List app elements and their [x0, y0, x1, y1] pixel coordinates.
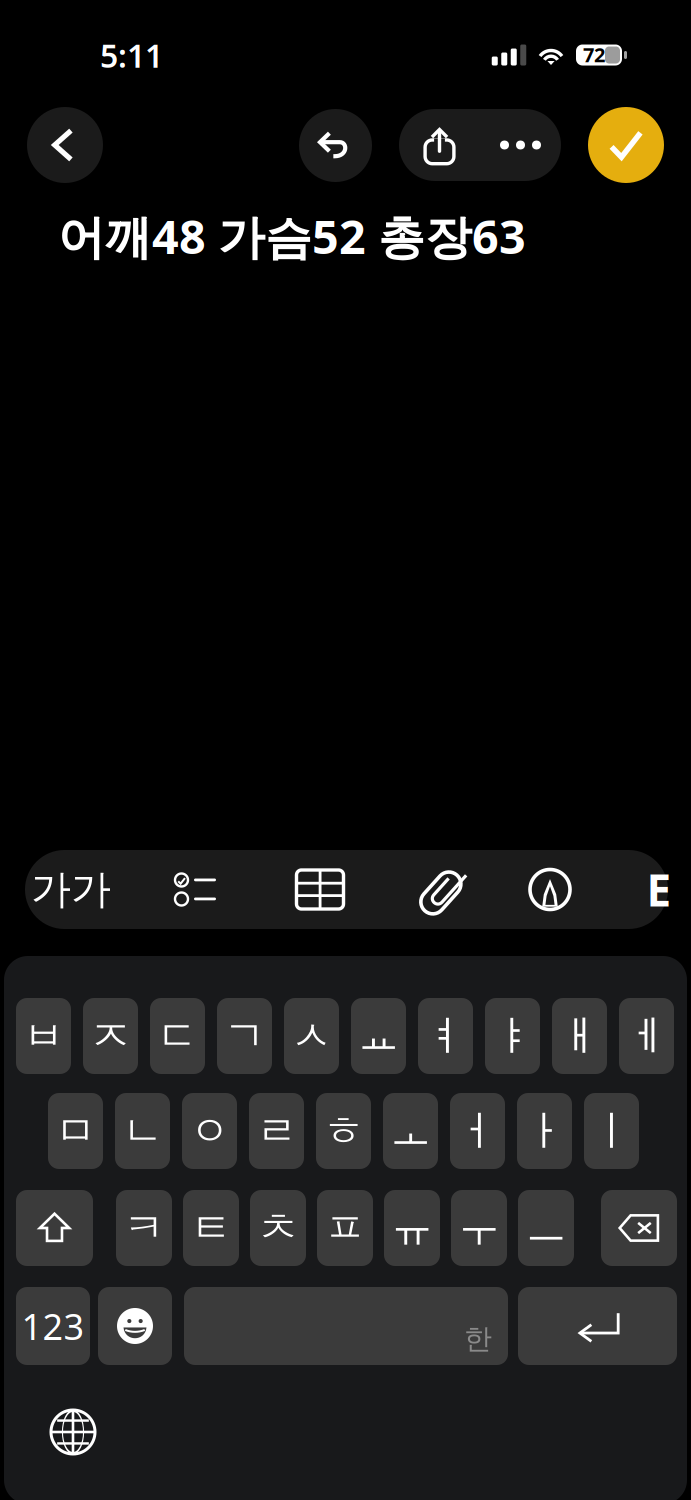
button[interactable]: More [480, 109, 561, 181]
button[interactable]: ㅓ [450, 1093, 505, 1169]
button[interactable]: ㅡ [518, 1190, 574, 1266]
staticText: 123 [21, 1302, 84, 1350]
staticText: ㅊ [257, 1203, 298, 1253]
staticText: ㅈ [90, 1011, 131, 1061]
staticText: ㅠ [391, 1203, 432, 1253]
staticText: ㄱ [224, 1011, 265, 1061]
button[interactable]: Emoji [98, 1287, 172, 1365]
staticText: ㅛ [358, 1011, 399, 1061]
button[interactable]: ㅁ [48, 1093, 103, 1169]
button[interactable]: ㅠ [384, 1190, 440, 1266]
staticText: ㅗ [390, 1106, 431, 1156]
staticText: 가가 [31, 865, 111, 914]
staticText: ㅇ [189, 1106, 230, 1156]
staticText: ㅕ [425, 1011, 466, 1061]
staticText: 한 [464, 1322, 492, 1356]
button[interactable]: Table [272, 850, 368, 929]
button[interactable]: Checklist [148, 850, 244, 929]
staticText: ㅍ [324, 1203, 365, 1253]
button[interactable]: Backspace [601, 1190, 677, 1266]
button[interactable]: ㅎ [316, 1093, 371, 1169]
button[interactable]: ㅈ [83, 998, 138, 1074]
staticText: E [646, 860, 671, 919]
button[interactable]: ㅗ [383, 1093, 438, 1169]
staticText: ㅏ [524, 1106, 565, 1156]
staticText: ㄷ [157, 1011, 198, 1061]
button[interactable]: Markup [502, 850, 598, 929]
button[interactable]: ㅋ [116, 1190, 172, 1266]
button[interactable]: ㅇ [182, 1093, 237, 1169]
button[interactable]: Attach [398, 850, 494, 929]
button[interactable]: ㅔ [619, 998, 674, 1074]
staticText: ㄴ [122, 1106, 163, 1156]
button[interactable]: ㅐ [552, 998, 607, 1074]
staticText: ㅋ [123, 1203, 164, 1253]
staticText: ㅜ [458, 1203, 499, 1253]
button[interactable]: ㄷ [150, 998, 205, 1074]
staticText: ㄹ [256, 1106, 297, 1156]
button[interactable]: ㄴ [115, 1093, 170, 1169]
staticText: ㅣ [591, 1106, 632, 1156]
staticText: ㅡ [525, 1203, 566, 1253]
button[interactable]: Undo [299, 109, 372, 182]
button[interactable]: Shift [16, 1190, 93, 1266]
button[interactable]: E [637, 850, 681, 929]
staticText: ㅐ [559, 1011, 600, 1061]
button[interactable]: ㄱ [217, 998, 272, 1074]
button[interactable]: ㅌ [183, 1190, 239, 1266]
staticText: 5:11 [100, 34, 163, 76]
button[interactable]: ㅅ [284, 998, 339, 1074]
button[interactable]: Switch keyboard [45, 1404, 101, 1460]
button[interactable]: ㅂ [16, 998, 71, 1074]
button[interactable]: ㅜ [451, 1190, 507, 1266]
button[interactable]: Space [184, 1287, 508, 1365]
button[interactable]: ㅣ [584, 1093, 639, 1169]
button[interactable]: ㅑ [485, 998, 540, 1074]
button[interactable]: ㅕ [418, 998, 473, 1074]
button[interactable]: Back [27, 107, 103, 183]
button[interactable]: Return [518, 1287, 677, 1365]
staticText: ㅌ [190, 1203, 231, 1253]
staticText: ㅎ [323, 1106, 364, 1156]
button[interactable]: ㅛ [351, 998, 406, 1074]
button[interactable]: ㅊ [250, 1190, 306, 1266]
button[interactable]: 123 [16, 1287, 90, 1365]
button[interactable]: Done [588, 107, 664, 183]
button[interactable]: ㄹ [249, 1093, 304, 1169]
button[interactable]: 가가 [25, 850, 117, 929]
staticText: 어깨48 가슴52 총장63 [58, 205, 526, 267]
staticText: ㅔ [626, 1011, 667, 1061]
staticText: ㅅ [291, 1011, 332, 1061]
button[interactable]: ㅏ [517, 1093, 572, 1169]
button[interactable]: ㅍ [317, 1190, 373, 1266]
button[interactable]: Share [399, 109, 480, 181]
staticText: ㅂ [23, 1011, 64, 1061]
staticText: ㅓ [457, 1106, 498, 1156]
staticText: ㅑ [492, 1011, 533, 1061]
staticText: ㅁ [55, 1106, 96, 1156]
staticText: 72 [583, 41, 605, 68]
